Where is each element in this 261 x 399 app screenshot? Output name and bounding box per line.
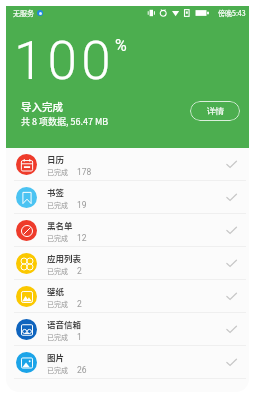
- staticText: 傍晚5:43: [218, 8, 246, 18]
- staticText: 导入完成: [21, 99, 63, 114]
- staticText: 2: [77, 266, 82, 276]
- staticText: 100: [14, 30, 115, 92]
- staticText: 黑名单: [47, 219, 73, 231]
- staticText: 已完成: [47, 266, 68, 276]
- button[interactable]: 书签: [6, 181, 249, 214]
- button[interactable]: 壁纸: [6, 280, 249, 313]
- staticText: 19: [77, 200, 87, 210]
- staticText: 1: [77, 332, 82, 342]
- staticText: 图片: [47, 351, 65, 363]
- staticText: 语音信箱: [47, 318, 82, 330]
- button[interactable]: 图片: [6, 346, 249, 379]
- staticText: 已完成: [47, 233, 68, 243]
- staticText: 178: [77, 167, 92, 177]
- staticText: 26: [77, 365, 87, 375]
- button[interactable]: 应用列表: [6, 247, 249, 280]
- staticText: 详情: [207, 106, 224, 117]
- staticText: 已完成: [47, 299, 68, 309]
- staticText: 已完成: [47, 365, 68, 375]
- staticText: 壁纸: [47, 285, 65, 297]
- staticText: 12: [77, 233, 87, 243]
- staticText: 2: [77, 299, 82, 309]
- staticText: 已完成: [47, 167, 68, 177]
- staticText: 已完成: [47, 200, 68, 210]
- button[interactable]: 详情: [190, 101, 240, 121]
- staticText: 日历: [47, 153, 65, 165]
- button[interactable]: 黑名单: [6, 214, 249, 247]
- staticText: 无服务: [13, 8, 34, 18]
- staticText: 应用列表: [47, 252, 82, 264]
- button[interactable]: 日历: [6, 148, 249, 181]
- button[interactable]: 语音信箱: [6, 313, 249, 346]
- staticText: 共 8 项数据, 56.47 MB: [21, 115, 109, 128]
- staticText: 已完成: [47, 332, 68, 342]
- staticText: %: [115, 36, 127, 55]
- staticText: 书签: [47, 186, 65, 198]
